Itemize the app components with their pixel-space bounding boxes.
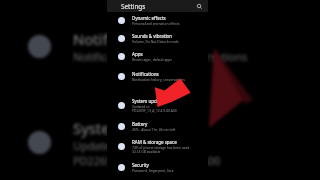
staticText: Settings (121, 2, 146, 11)
button[interactable]: System update (107, 96, 208, 114)
staticText: 45% - About 7 hr, 46 min left (132, 127, 176, 131)
button[interactable]: Notifications (0, 17, 310, 76)
button[interactable]: Security (107, 158, 208, 176)
staticText: Updated to (73, 138, 131, 153)
staticText: Sounds & vibration (132, 33, 173, 39)
staticText: Password, fingerprint, face (132, 168, 174, 172)
staticText: Updated to (132, 104, 150, 108)
staticText: PD2269F_13_A_12.4.9.40.A00 (132, 108, 177, 112)
staticText: Notification history, conversations (132, 77, 185, 81)
button[interactable]: Notifications (107, 67, 208, 85)
button[interactable]: System update (0, 113, 310, 172)
button[interactable]: RAM & storage space (107, 137, 208, 155)
staticText: Apps (132, 51, 143, 57)
staticText: Volume, Do Not Disturb mode (132, 39, 179, 43)
button[interactable]: Apps (107, 47, 208, 65)
staticText: Recent apps, default apps (132, 57, 172, 61)
staticText: System update (73, 118, 177, 138)
button[interactable]: Dynamic effects (107, 11, 208, 29)
staticText: Personalized animation effects (132, 21, 180, 25)
staticText: Notifications (73, 29, 162, 49)
button[interactable]: Apps (0, 0, 310, 9)
staticText: PD2269F_13_A_12.4.9.40.A00 (73, 153, 221, 168)
button[interactable]: Sounds & vibration (107, 29, 208, 47)
staticText: 74% of phone storage has been used - (132, 145, 192, 149)
staticText: Battery (132, 121, 148, 127)
staticText: Dynamic effects (132, 15, 166, 21)
button[interactable]: Search (195, 2, 203, 10)
staticText: Security (132, 162, 149, 168)
staticText: RAM & storage space (132, 139, 177, 145)
button[interactable]: Battery (107, 117, 208, 135)
staticText: Notification history, conversations (73, 49, 248, 64)
staticText: Notifications (132, 71, 159, 77)
staticText: 32.14 GB available (132, 149, 161, 153)
staticText: System update (132, 98, 164, 104)
